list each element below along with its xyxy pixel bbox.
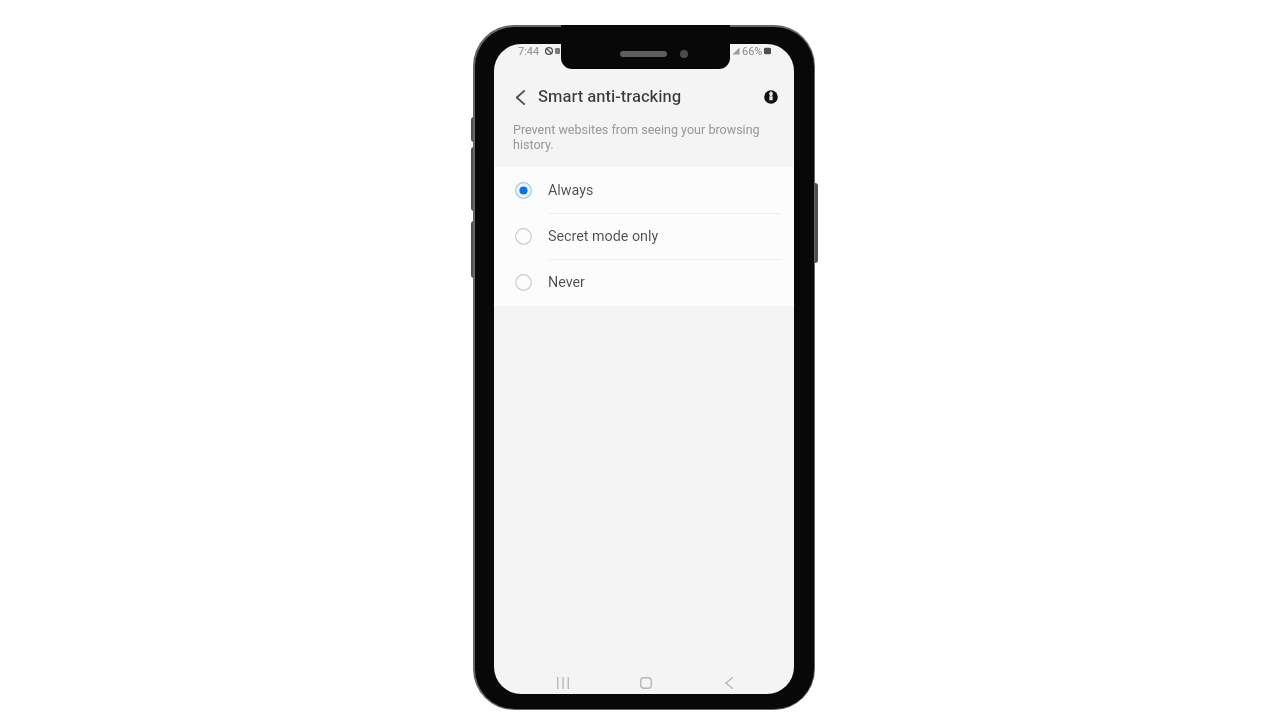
staticText: 7:44	[518, 45, 540, 58]
button[interactable]: Back	[711, 665, 747, 694]
button[interactable]: Navigate up	[508, 85, 532, 109]
staticText: Always	[548, 182, 594, 199]
button[interactable]: Information	[759, 85, 783, 109]
staticText: Prevent websites from seeing your browsi…	[513, 122, 769, 152]
button[interactable]: Home	[628, 665, 664, 694]
button[interactable]: Recent apps	[545, 665, 581, 694]
staticText: 66%	[742, 45, 763, 58]
staticText: Never	[548, 274, 585, 291]
button[interactable]: Secret mode only	[494, 213, 794, 259]
button[interactable]: Never	[494, 259, 794, 305]
button[interactable]: Always	[494, 167, 794, 213]
staticText: Secret mode only	[548, 228, 659, 245]
staticText: Smart anti-tracking	[538, 87, 682, 106]
